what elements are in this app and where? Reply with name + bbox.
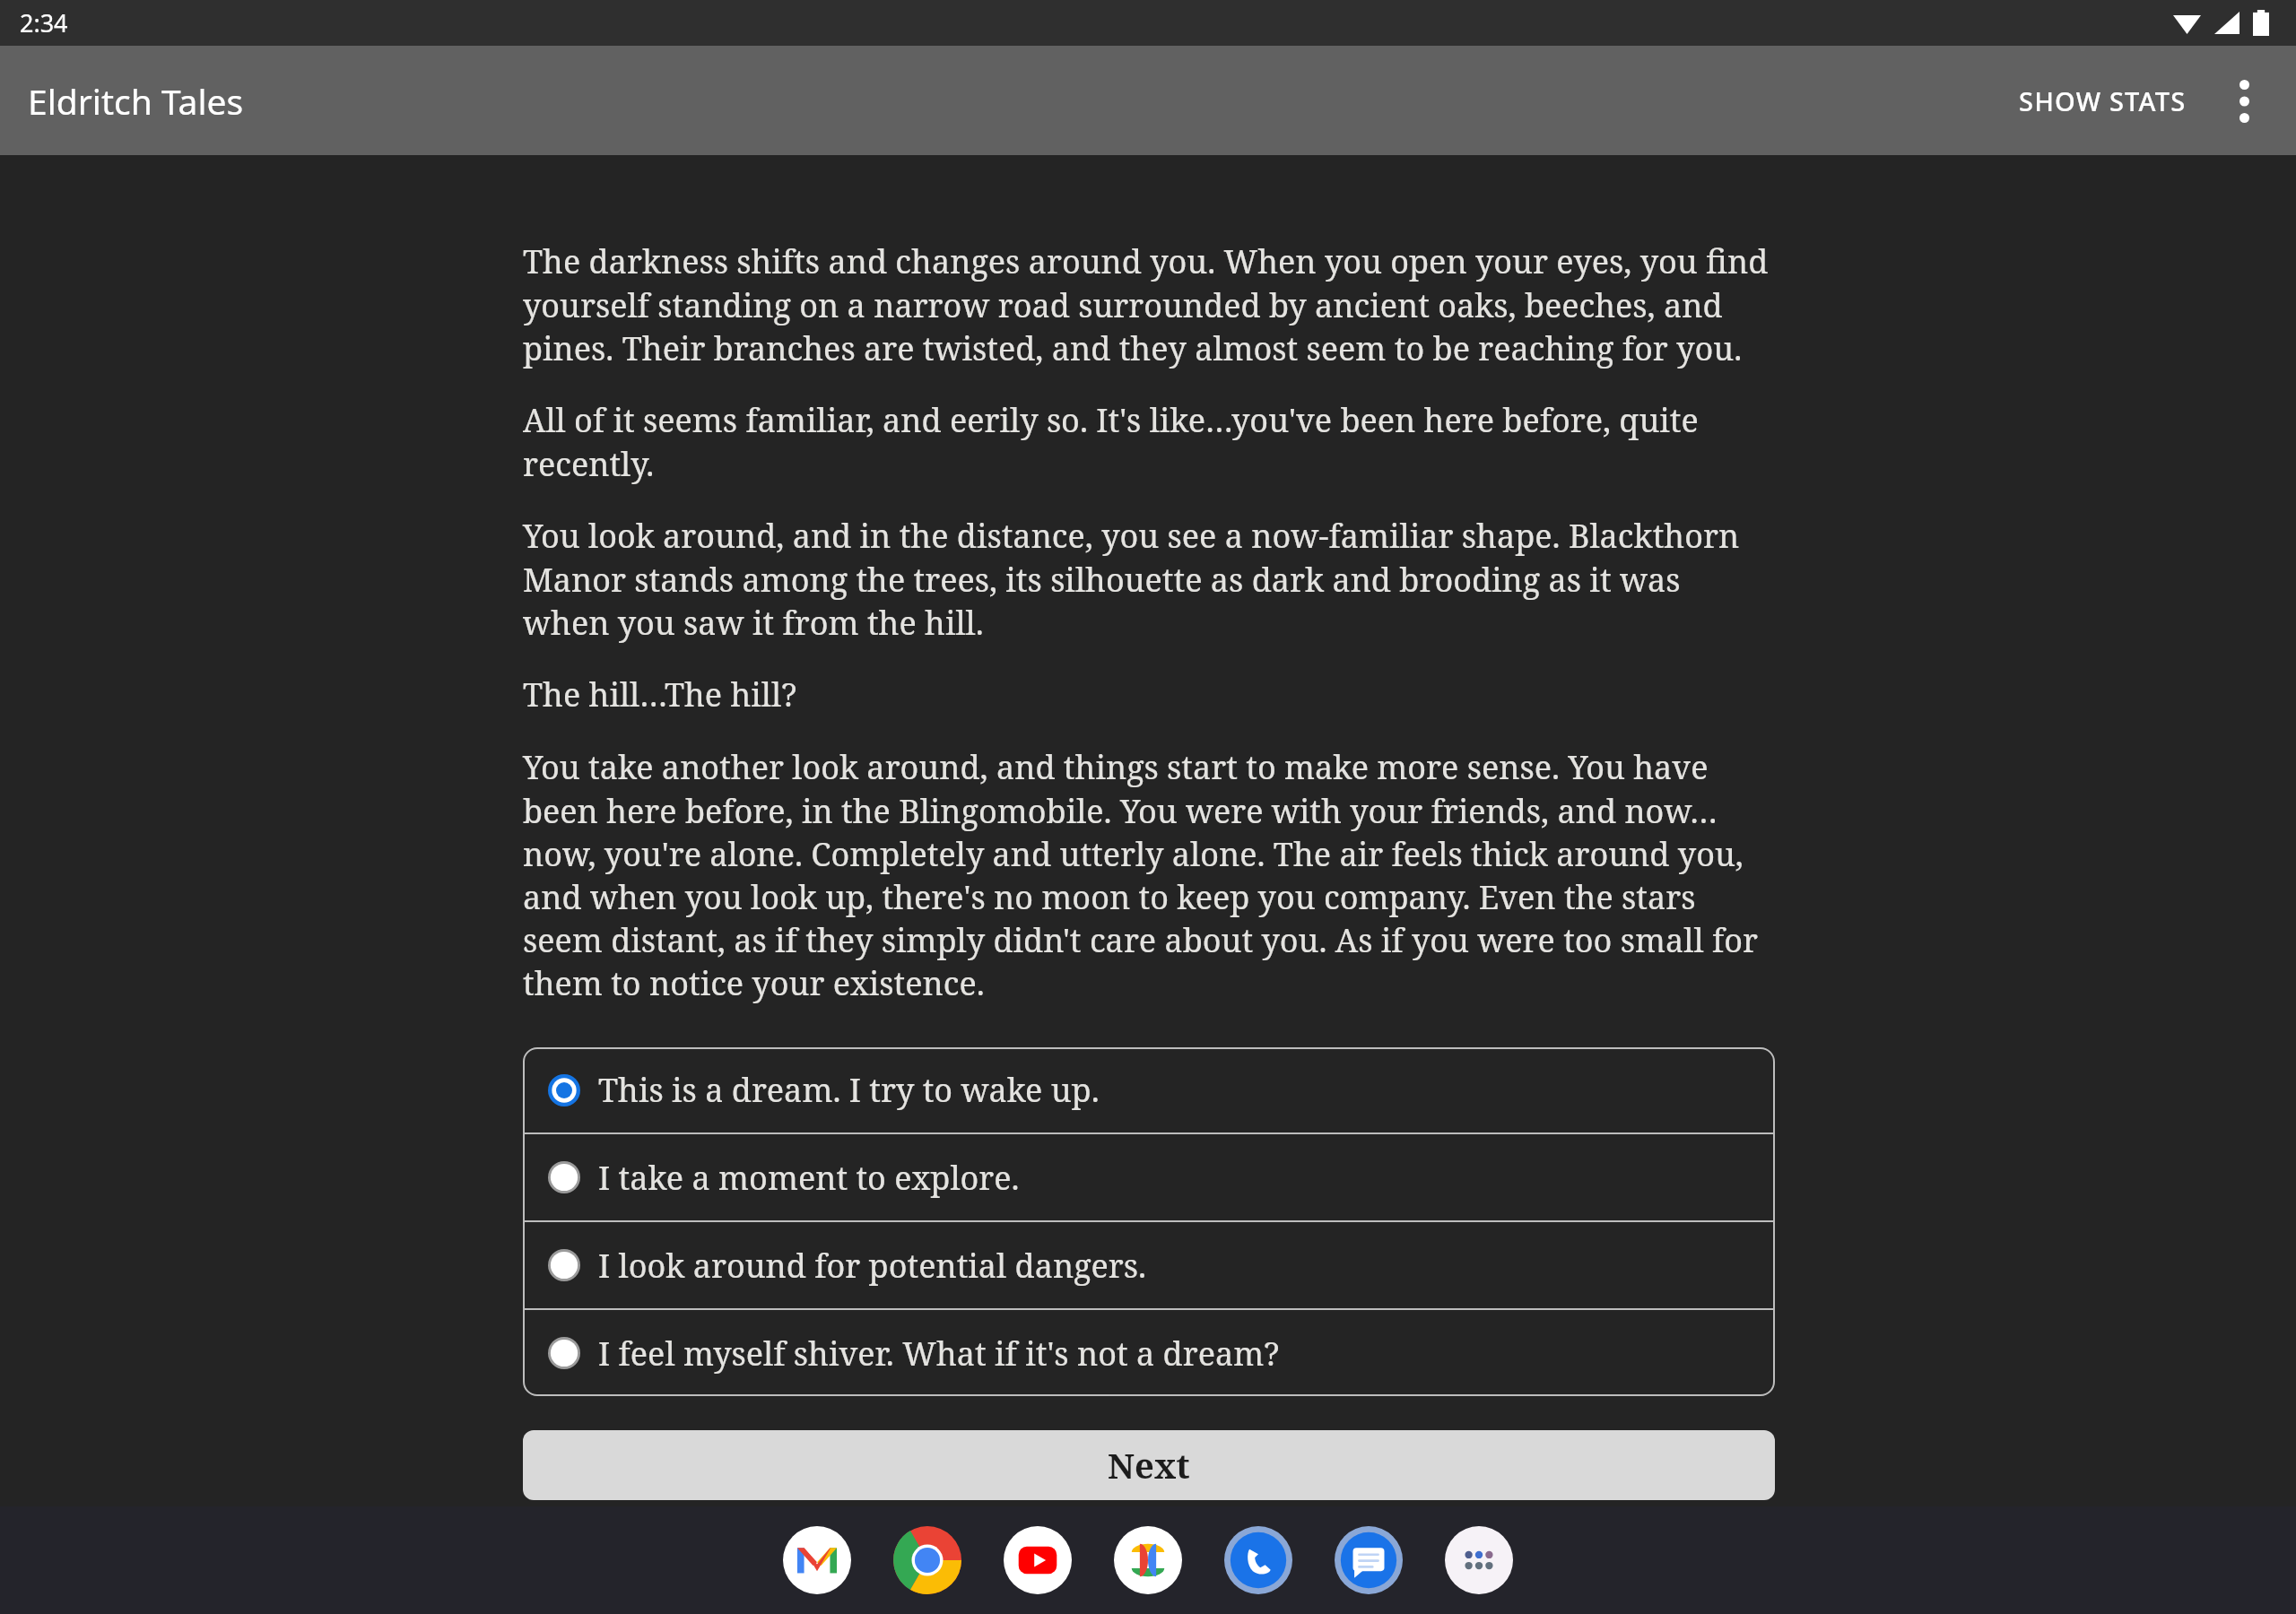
staticText: I take a moment to explore.	[598, 1156, 1020, 1200]
button[interactable]: I take a moment to explore.	[523, 1134, 1775, 1220]
staticText: You look around, and in the distance, yo…	[523, 514, 1775, 644]
button[interactable]: Gmail	[782, 1525, 852, 1595]
staticText: The hill…The hill?	[523, 672, 1775, 716]
staticText: You take another look around, and things…	[523, 745, 1775, 1004]
button[interactable]: SHOW STATS	[2001, 60, 2205, 142]
staticText: Eldritch Tales	[28, 77, 244, 125]
button[interactable]: Photos	[1113, 1525, 1183, 1595]
staticText: SHOW STATS	[2019, 83, 2187, 118]
staticText: The darkness shifts and changes around y…	[523, 239, 1775, 369]
button[interactable]: Messages	[1334, 1525, 1404, 1595]
staticText: I look around for potential dangers.	[598, 1244, 1147, 1288]
button[interactable]: YouTube	[1003, 1525, 1073, 1595]
staticText: This is a dream. I try to wake up.	[598, 1068, 1100, 1112]
button[interactable]: Phone	[1223, 1525, 1293, 1595]
button[interactable]: I feel myself shiver. What if it's not a…	[523, 1310, 1775, 1396]
staticText: Next	[1108, 1442, 1190, 1488]
button[interactable]: More options	[2205, 62, 2283, 141]
button[interactable]: Next	[523, 1430, 1775, 1500]
button[interactable]: I look around for potential dangers.	[523, 1222, 1775, 1308]
button[interactable]: All apps	[1444, 1525, 1514, 1595]
staticText: 2:34	[20, 6, 68, 39]
staticText: All of it seems familiar, and eerily so.…	[523, 398, 1775, 485]
staticText: I feel myself shiver. What if it's not a…	[598, 1332, 1280, 1375]
button[interactable]: Chrome	[892, 1525, 962, 1595]
button[interactable]: This is a dream. I try to wake up.	[523, 1047, 1775, 1132]
